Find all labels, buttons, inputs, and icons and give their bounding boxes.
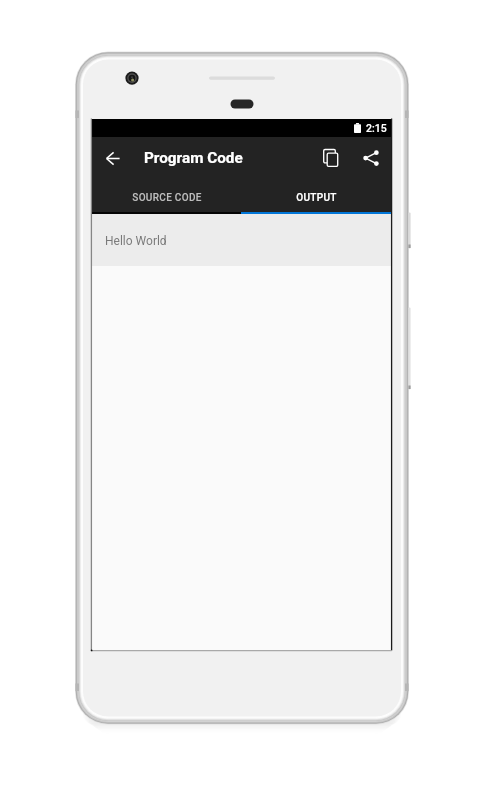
button[interactable]: OUTPUT xyxy=(241,178,391,214)
button[interactable]: SOURCE CODE xyxy=(92,178,241,214)
staticText: SOURCE CODE xyxy=(132,192,202,204)
button[interactable]: Navigate up xyxy=(95,140,131,176)
staticText: 2:15 xyxy=(366,122,387,134)
button[interactable]: Share xyxy=(351,138,391,178)
staticText: OUTPUT xyxy=(296,192,337,204)
staticText: Program Code xyxy=(144,149,243,167)
button[interactable]: Copy xyxy=(311,138,351,178)
staticText: Hello World xyxy=(105,234,167,248)
